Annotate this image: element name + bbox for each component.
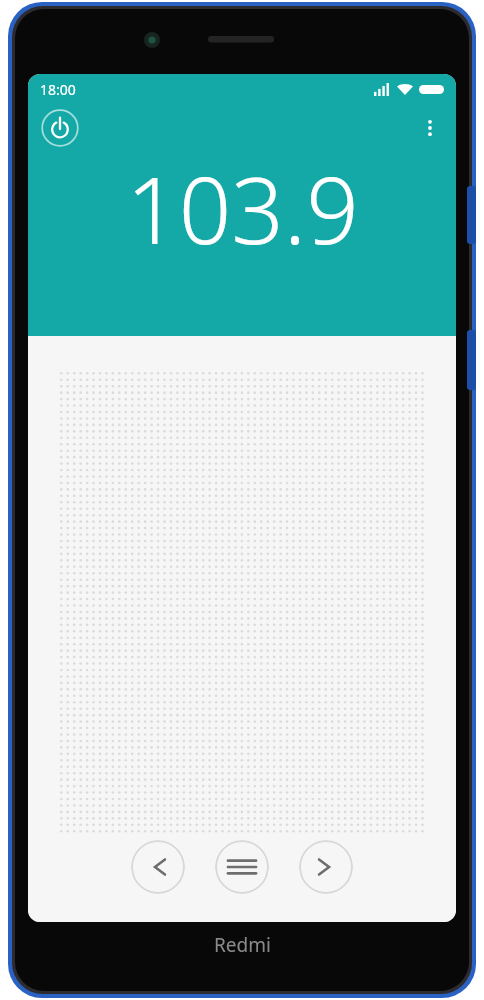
staticText: Redmi (214, 932, 271, 958)
button[interactable]: Previous station (131, 840, 185, 894)
button[interactable]: More options (412, 110, 448, 146)
staticText: 103.9 (126, 146, 359, 271)
staticText: 18:00 (40, 80, 76, 99)
button[interactable]: Station list (215, 840, 269, 894)
button[interactable]: Power (40, 108, 80, 148)
button[interactable]: Next station (299, 840, 353, 894)
